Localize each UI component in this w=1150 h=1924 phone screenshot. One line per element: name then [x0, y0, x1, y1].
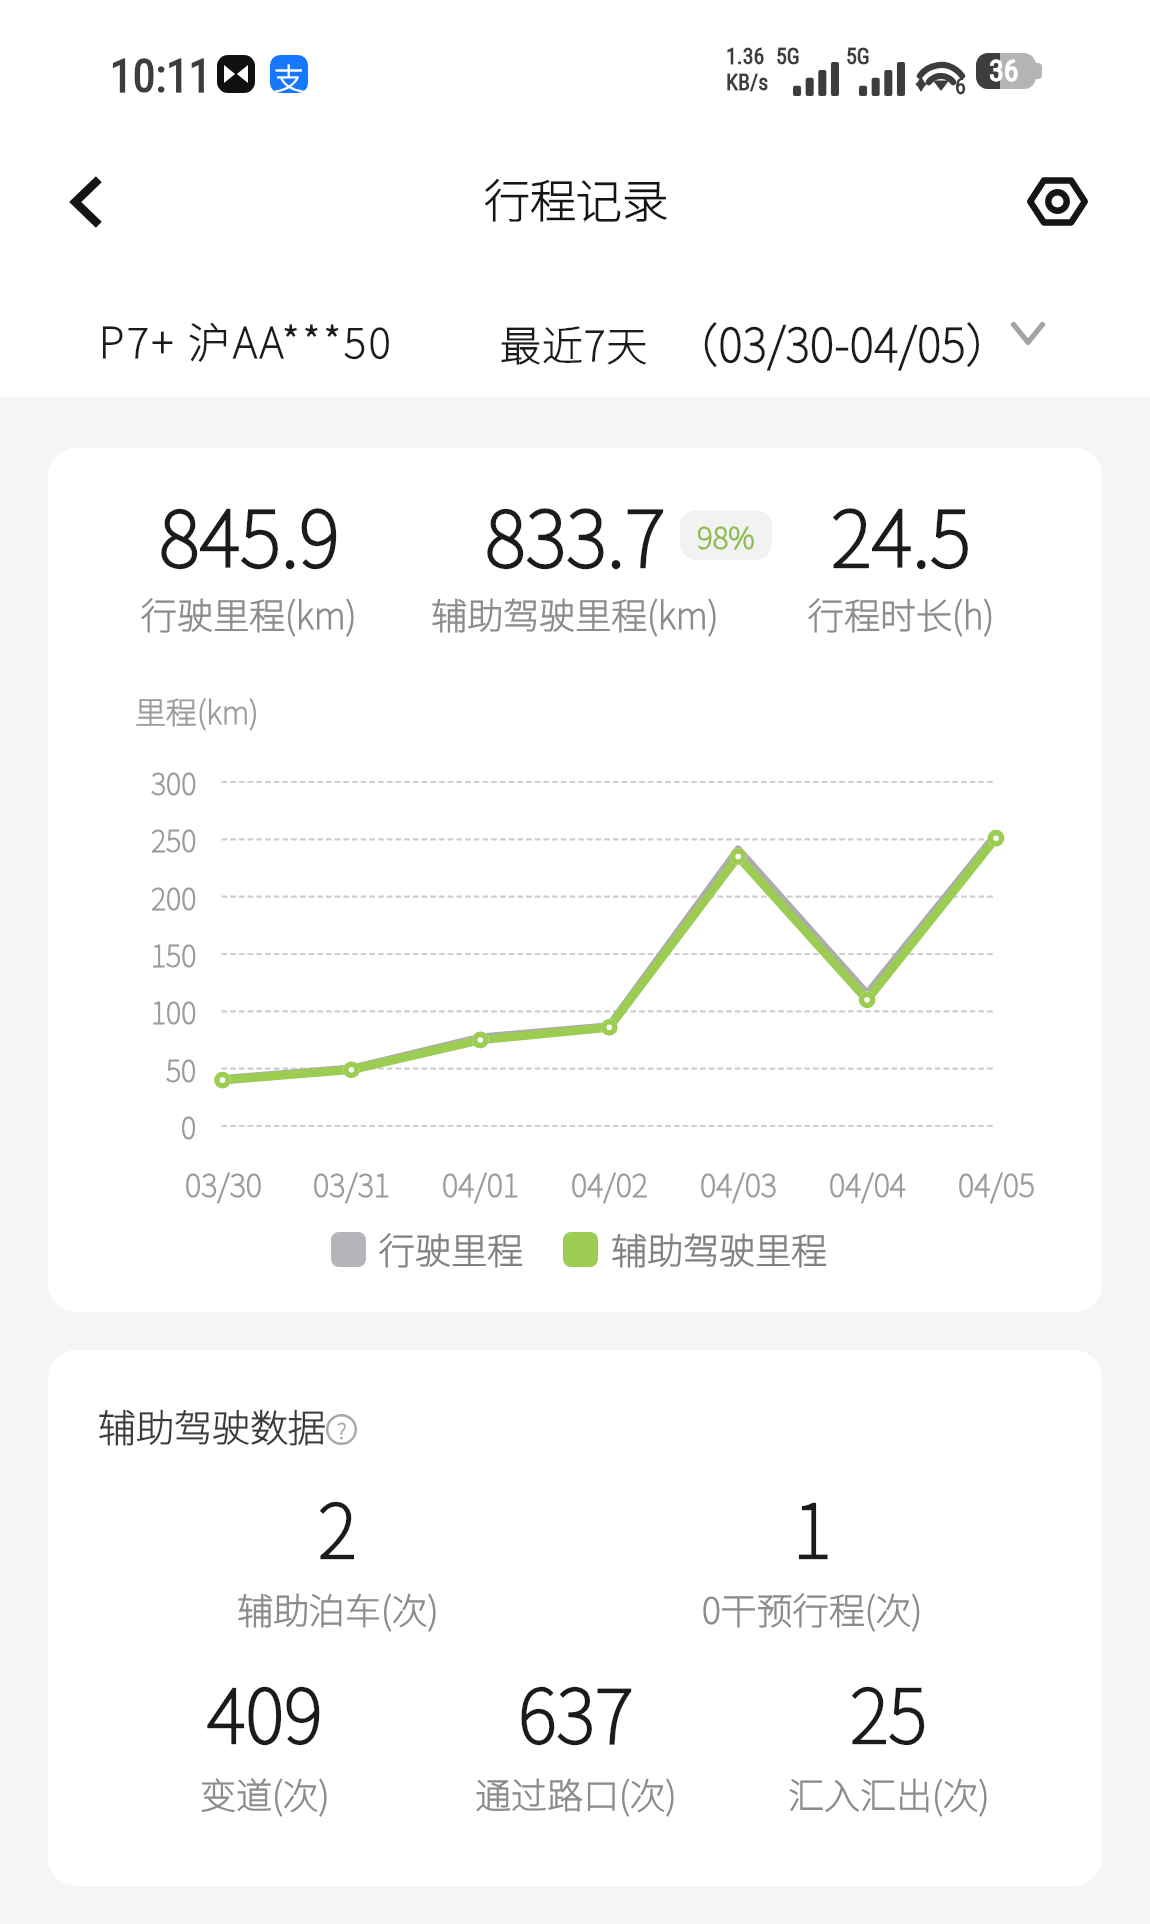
staticText: 100	[151, 990, 197, 1032]
staticText: 04/01	[442, 1161, 519, 1206]
button[interactable]: Settings	[1002, 146, 1112, 256]
staticText: 行驶里程(km)	[141, 587, 357, 639]
staticText: 里程(km)	[135, 688, 259, 733]
staticText: 03/31	[313, 1161, 390, 1206]
staticText: 36	[989, 53, 1019, 88]
staticText: KB/s	[726, 70, 769, 96]
button[interactable]: 最近7天	[486, 295, 1027, 390]
staticText: 04/02	[571, 1161, 648, 1206]
staticText: 10:11	[110, 49, 212, 103]
button[interactable]: Help	[306, 1394, 376, 1464]
button[interactable]: Back	[30, 142, 140, 262]
staticText: 汇入汇出(次)	[788, 1767, 990, 1819]
staticText: 5G	[776, 44, 800, 70]
staticText: 04/05	[958, 1161, 1035, 1206]
staticText: 6	[955, 74, 966, 100]
staticText: 300	[151, 761, 197, 803]
staticText: 通过路口(次)	[475, 1767, 677, 1819]
staticText: 24.5	[831, 477, 971, 590]
staticText: 03/30	[185, 1161, 262, 1206]
staticText: P7+ 沪AA***50	[99, 309, 394, 370]
staticText: ?	[337, 1413, 347, 1444]
staticText: 辅助驾驶里程	[611, 1222, 828, 1274]
staticText: 行驶里程	[379, 1222, 524, 1274]
staticText: 辅助驾驶里程(km)	[431, 587, 719, 639]
staticText: 变道(次)	[200, 1767, 330, 1819]
staticText: 最近7天	[500, 313, 649, 372]
staticText: 0	[181, 1105, 197, 1147]
staticText: 833.7	[485, 477, 666, 590]
staticText: 04/03	[700, 1161, 777, 1206]
staticText: 637	[518, 1657, 634, 1764]
staticText: 1	[793, 1472, 832, 1579]
button[interactable]: P7+ 沪AA***50	[85, 295, 408, 384]
staticText: 04/04	[829, 1161, 906, 1206]
staticText: 行程记录	[484, 165, 668, 232]
staticText: 98%	[697, 514, 755, 557]
staticText: （03/30-04/05）	[672, 309, 1013, 376]
staticText: 250	[151, 818, 197, 860]
staticText: 2	[318, 1472, 357, 1579]
staticText: 行程时长(h)	[808, 587, 995, 639]
staticText: 1.36	[726, 44, 765, 70]
staticText: 25	[850, 1657, 928, 1764]
staticText: 辅助泊车(次)	[237, 1582, 439, 1634]
staticText: 0干预行程(次)	[702, 1582, 923, 1634]
button[interactable]: Change date range	[981, 289, 1075, 377]
staticText: 845.9	[159, 477, 340, 590]
staticText: 支	[274, 55, 304, 93]
staticText: 409	[207, 1657, 323, 1764]
staticText: 辅助驾驶数据	[98, 1398, 327, 1453]
staticText: 50	[166, 1048, 197, 1090]
staticText: 5G	[846, 44, 870, 70]
staticText: 200	[151, 876, 197, 918]
staticText: 150	[151, 933, 197, 975]
